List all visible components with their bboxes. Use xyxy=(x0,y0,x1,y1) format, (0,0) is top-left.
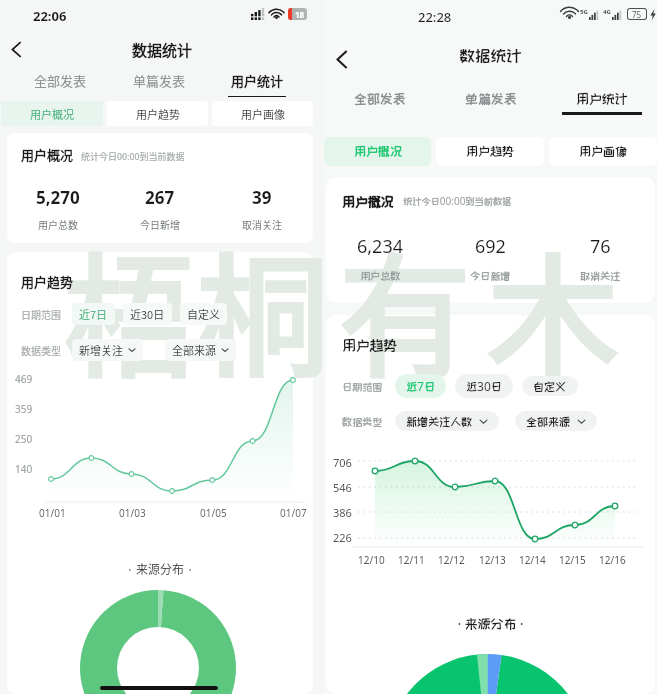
button[interactable]: 用户统计 xyxy=(546,92,657,122)
button[interactable]: 692 xyxy=(435,234,545,281)
staticText: 新增关注人数 xyxy=(406,415,473,427)
staticText: 75 xyxy=(632,9,642,19)
staticText: 桐 xyxy=(197,212,329,403)
button[interactable]: 用户画像 xyxy=(212,101,313,126)
button[interactable]: 6,234 xyxy=(326,234,435,281)
staticText: 12/16 xyxy=(599,553,626,567)
staticText: 01/07 xyxy=(280,506,307,520)
staticText: 近30日 xyxy=(130,306,165,322)
staticText: 用户趋势 xyxy=(21,272,74,291)
button[interactable]: 自定义 xyxy=(522,376,578,396)
button[interactable]: 单篇发表 xyxy=(110,71,208,97)
staticText: 单篇发表 xyxy=(133,71,186,90)
staticText: 取消关注 xyxy=(242,217,282,231)
staticText: 5G xyxy=(580,8,588,16)
staticText: 用户统计 xyxy=(576,92,628,106)
staticText: 39 xyxy=(252,186,272,209)
staticText: 数据统计 xyxy=(324,47,657,64)
staticText: 12/13 xyxy=(479,553,506,567)
button[interactable]: 全部发表 xyxy=(324,92,435,122)
staticText: 日期范围 xyxy=(342,381,383,392)
button[interactable]: 用户趋势 xyxy=(107,101,208,126)
staticText: 全部来源 xyxy=(526,415,571,427)
staticText: 数据统计 xyxy=(0,39,324,61)
staticText: 4G xyxy=(603,8,611,16)
button[interactable]: 用户趋势 xyxy=(436,137,544,166)
staticText: 用户趋势 xyxy=(136,106,180,122)
button[interactable]: 单篇发表 xyxy=(435,92,546,122)
button[interactable]: 新增关注 xyxy=(72,339,143,361)
staticText: 用户总数 xyxy=(360,270,401,281)
staticText: 今日新增 xyxy=(140,217,180,231)
staticText: 12/12 xyxy=(438,553,465,567)
button[interactable]: 267 xyxy=(109,186,211,231)
button[interactable]: 39 xyxy=(211,186,313,231)
staticText: 469 xyxy=(15,372,33,386)
button[interactable]: 全部来源 xyxy=(515,411,597,431)
staticText: 有 xyxy=(339,212,471,403)
staticText: 用户概况 xyxy=(21,145,74,164)
staticText: 546 xyxy=(333,480,352,495)
staticText: 用户画像 xyxy=(579,145,627,158)
staticText: 用户总数 xyxy=(38,217,78,231)
staticText: 今日新增 xyxy=(470,270,511,281)
button[interactable]: 用户概况 xyxy=(1,101,103,126)
staticText: 01/01 xyxy=(39,506,66,520)
staticText: 木 xyxy=(487,212,619,403)
staticText: 统计今日00:00到当前数据 xyxy=(81,150,185,163)
staticText: 22:28 xyxy=(418,8,452,26)
staticText: 12/15 xyxy=(559,553,586,567)
staticText: 359 xyxy=(15,402,33,416)
staticText: 单篇发表 xyxy=(465,92,517,106)
button[interactable]: 近7日 xyxy=(395,374,446,398)
button[interactable]: 新增关注人数 xyxy=(395,411,499,431)
button[interactable]: 用户画像 xyxy=(549,137,657,166)
staticText: 12/14 xyxy=(519,553,546,567)
staticText: 自定义 xyxy=(187,306,220,322)
staticText: 386 xyxy=(333,505,352,520)
button[interactable]: 近30日 xyxy=(123,303,172,325)
staticText: 5,270 xyxy=(36,186,80,209)
button[interactable]: Back xyxy=(329,47,353,71)
staticText: 用户画像 xyxy=(241,106,285,122)
staticText: 统计今日00:00到当前数据 xyxy=(403,194,512,208)
staticText: 梧 xyxy=(64,212,196,403)
staticText: 140 xyxy=(15,462,33,476)
staticText: 用户概况 xyxy=(354,145,402,158)
staticText: 用户统计 xyxy=(231,71,284,90)
staticText: 全部来源 xyxy=(172,342,216,358)
button[interactable]: 用户统计 xyxy=(208,71,306,97)
button[interactable]: 全部来源 xyxy=(165,339,236,361)
button[interactable]: Back xyxy=(5,38,27,60)
staticText: 706 xyxy=(333,455,352,470)
button[interactable]: 76 xyxy=(545,234,655,281)
staticText: 近7日 xyxy=(406,378,435,394)
staticText: · 来源分布 · xyxy=(7,560,313,577)
staticText: 692 xyxy=(475,234,506,259)
staticText: 22:06 xyxy=(33,7,67,25)
staticText: 全部发表 xyxy=(354,92,406,106)
staticText: 226 xyxy=(333,530,352,545)
staticText: 全部发表 xyxy=(34,71,87,90)
button[interactable]: 用户概况 xyxy=(324,137,431,166)
button[interactable]: 自定义 xyxy=(180,303,227,325)
staticText: · 来源分布 · xyxy=(326,614,655,633)
staticText: 数据类型 xyxy=(342,416,383,427)
button[interactable]: 近30日 xyxy=(455,374,513,398)
button[interactable]: 近7日 xyxy=(72,303,115,325)
staticText: 近7日 xyxy=(79,306,108,322)
staticText: 6,234 xyxy=(357,234,404,259)
staticText: 自定义 xyxy=(533,380,567,392)
staticText: 01/03 xyxy=(119,506,146,520)
staticText: 用户概况 xyxy=(30,106,74,122)
staticText: 日期范围 xyxy=(21,307,61,321)
staticText: 近30日 xyxy=(466,378,502,394)
staticText: 250 xyxy=(15,432,33,446)
staticText: 数据类型 xyxy=(21,343,61,357)
staticText: 用户概况 xyxy=(342,195,394,209)
staticText: 12/11 xyxy=(398,553,425,567)
staticText: 267 xyxy=(145,186,175,209)
staticText: 18 xyxy=(295,9,305,20)
button[interactable]: 5,270 xyxy=(7,186,109,231)
button[interactable]: 全部发表 xyxy=(11,71,110,97)
